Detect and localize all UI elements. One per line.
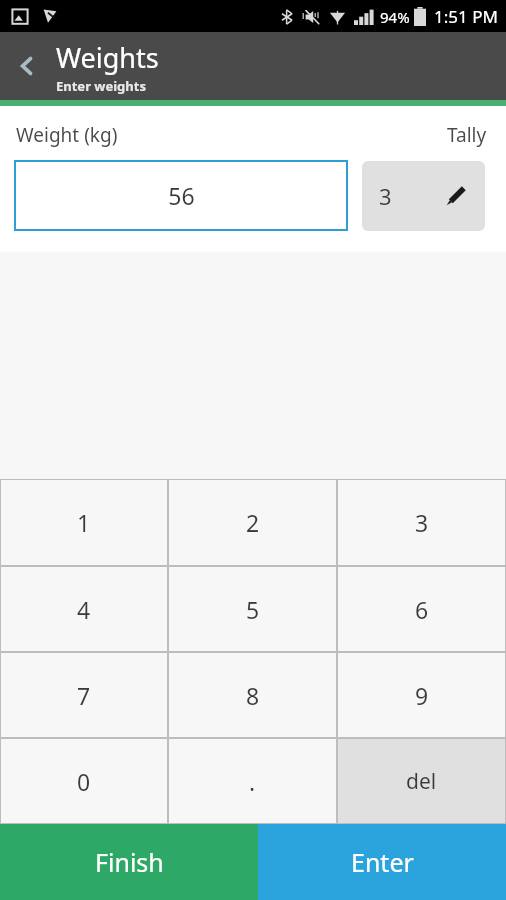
button[interactable]: Back [0, 39, 54, 93]
staticText: 4 [77, 594, 91, 625]
staticText: 8 [246, 680, 260, 711]
staticText: 7 [77, 680, 91, 711]
staticText: 6 [415, 594, 429, 625]
button[interactable]: Edit tally [362, 161, 485, 231]
button[interactable]: 1 [0, 479, 168, 566]
button[interactable]: 0 [0, 738, 168, 824]
staticText: del [406, 767, 437, 796]
button[interactable]: 2 [168, 479, 337, 566]
staticText: 0 [77, 766, 91, 797]
staticText: . [249, 766, 256, 797]
button[interactable]: 8 [168, 652, 337, 738]
button[interactable]: 6 [337, 566, 506, 652]
button[interactable]: 56 [14, 160, 348, 231]
staticText: 3 [379, 181, 392, 211]
button[interactable]: 4 [0, 566, 168, 652]
staticText: 2 [246, 507, 260, 538]
staticText: 94% [380, 7, 410, 27]
button[interactable]: . [168, 738, 337, 824]
staticText: Tally [447, 122, 487, 148]
button[interactable]: 3 [337, 479, 506, 566]
button[interactable]: del [337, 738, 506, 824]
staticText: Enter weights [56, 77, 146, 95]
button[interactable]: Finish [0, 824, 258, 900]
staticText: Weight (kg) [16, 122, 118, 148]
button[interactable]: 7 [0, 652, 168, 738]
button[interactable]: 5 [168, 566, 337, 652]
staticText: 9 [415, 680, 429, 711]
staticText: 3 [415, 507, 429, 538]
staticText: Enter [351, 845, 414, 879]
staticText: 56 [168, 180, 195, 211]
button[interactable]: 9 [337, 652, 506, 738]
staticText: Weights [56, 39, 159, 76]
staticText: Finish [95, 845, 164, 879]
button[interactable]: Enter [258, 824, 506, 900]
staticText: 5 [246, 594, 260, 625]
staticText: 1 [77, 507, 91, 538]
staticText: 1:51 PM [434, 5, 498, 28]
